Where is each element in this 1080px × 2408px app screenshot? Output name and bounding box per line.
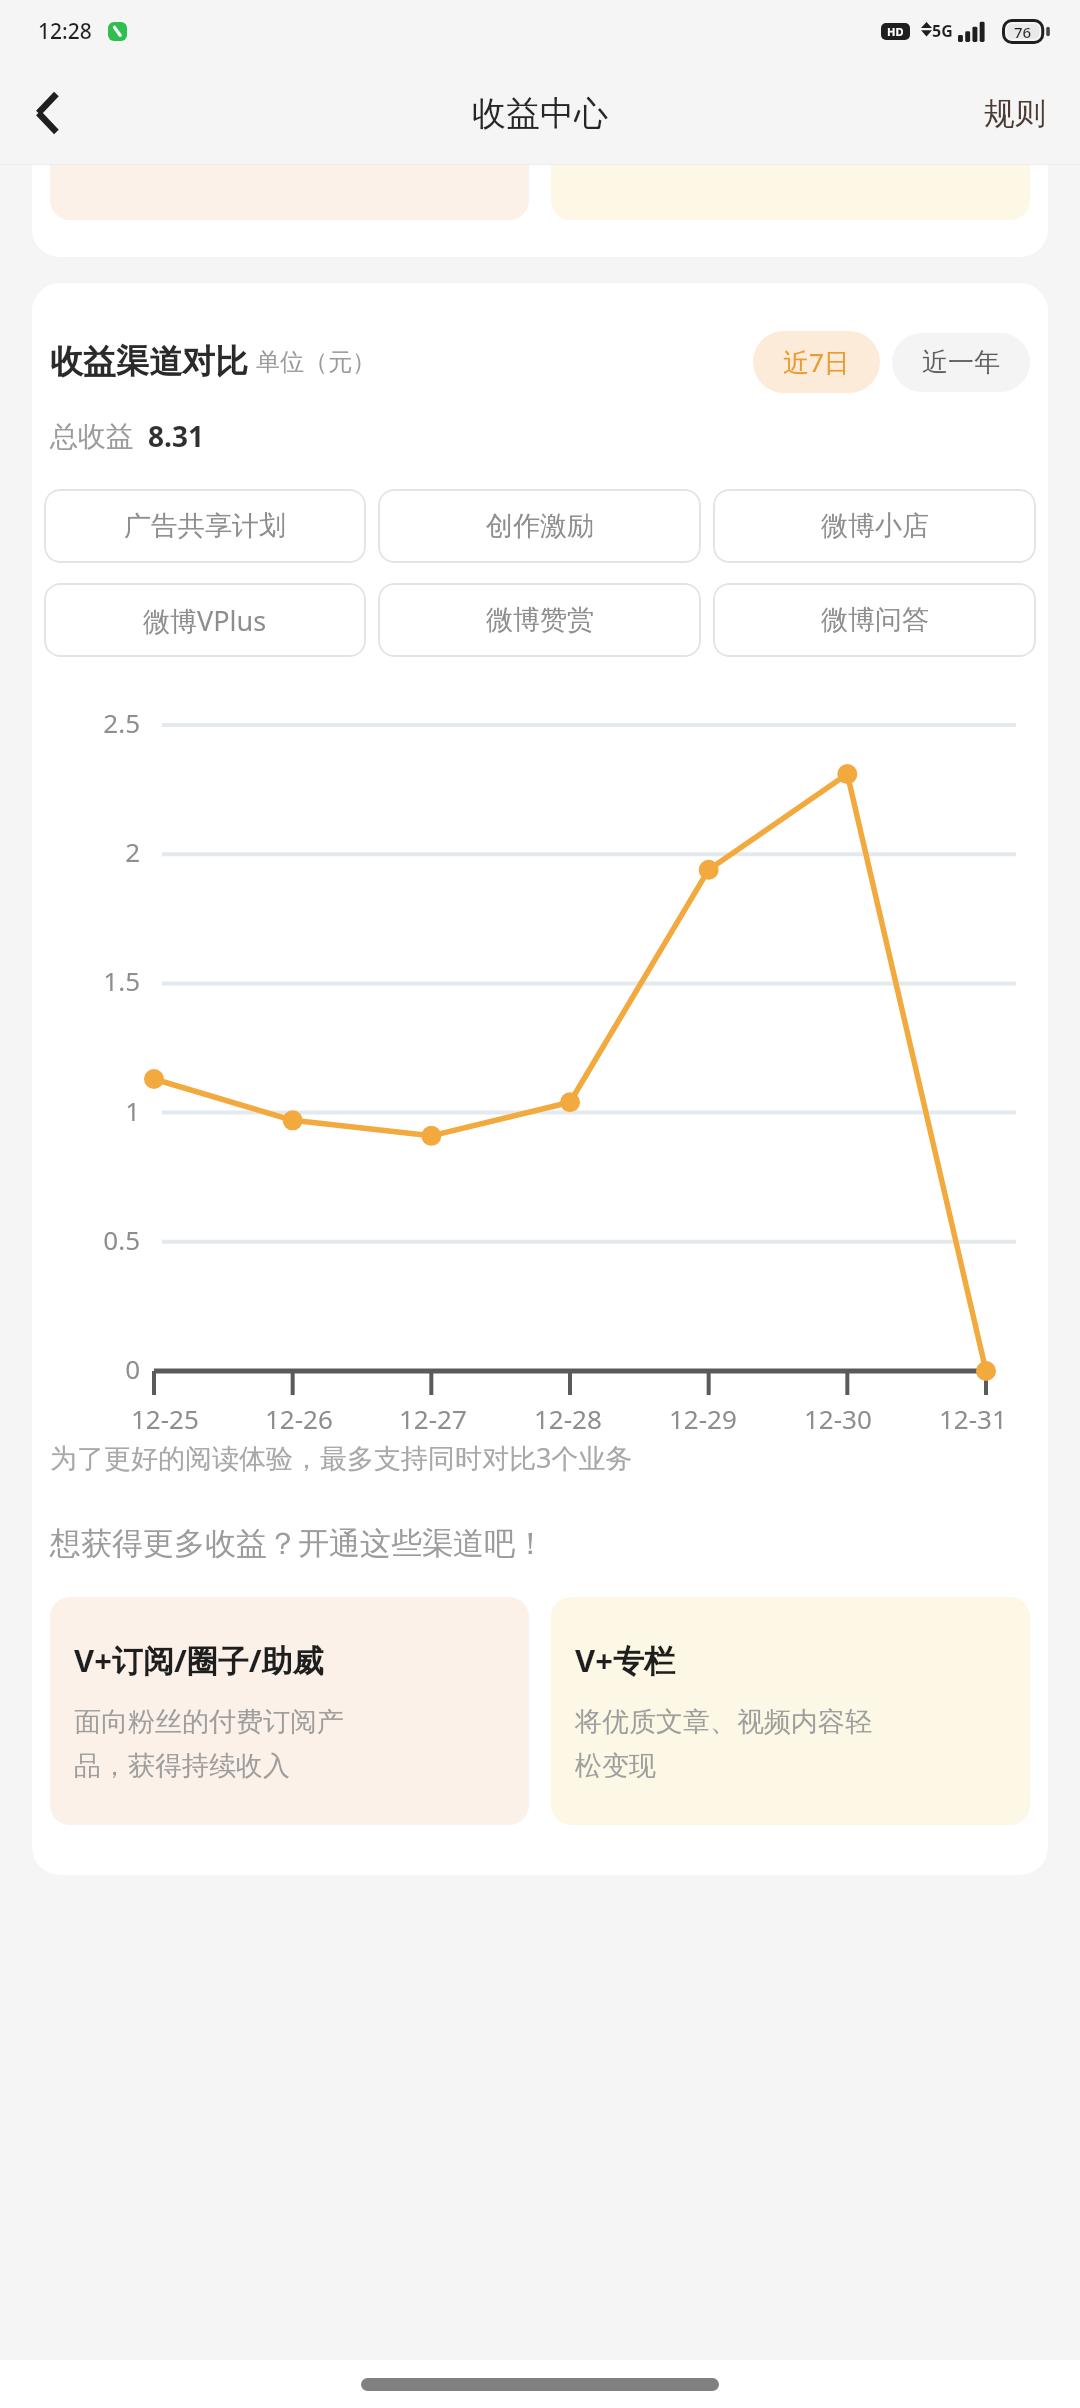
staticText: 12-31 [939,1401,1007,1436]
button[interactable]: 微博VPlus [44,583,366,657]
staticText: 1.5 [103,963,140,998]
staticText: 近一年 [922,346,1000,379]
staticText: 微博问答 [821,603,929,637]
button[interactable]: 规则 [950,74,1080,153]
staticText: 5G [932,20,953,42]
staticText: 12-27 [399,1401,467,1436]
button[interactable]: V+订阅/圈子/助威 [50,1597,529,1825]
staticText: V+订阅/圈子/助威 [74,1639,324,1681]
staticText: 想获得更多收益？开通这些渠道吧！ [50,1524,546,1563]
button[interactable]: 微博问答 [713,583,1036,657]
staticText: 将优质文章、视频内容轻 松变现 [575,1705,872,1783]
button[interactable]: 近一年 [892,333,1030,392]
staticText: 76 [1014,22,1032,42]
staticText: 收益中心 [472,92,608,135]
staticText: 微博小店 [821,509,929,543]
staticText: 12-26 [265,1401,333,1436]
staticText: 0 [125,1351,140,1386]
staticText: 近7日 [783,344,850,380]
staticText: 2 [125,834,140,869]
staticText: 1 [125,1093,140,1128]
button[interactable]: 微博赞赏 [378,583,701,657]
staticText: 0.5 [103,1222,140,1257]
staticText: 12-29 [669,1401,737,1436]
staticText: 单位（元） [256,347,376,377]
staticText: 微博赞赏 [486,603,594,637]
button[interactable]: 微博小店 [713,489,1036,563]
button[interactable]: V+专栏 [551,1597,1030,1825]
staticText: 12:28 [38,17,92,46]
button[interactable]: 近7日 [753,331,880,393]
button[interactable]: 创作激励 [378,489,701,563]
staticText: 12-25 [131,1401,199,1436]
staticText: 2.5 [103,705,140,740]
staticText: 12-30 [804,1401,872,1436]
staticText: 面向粉丝的付费订阅产 品，获得持续收入 [74,1705,344,1783]
staticText: 创作激励 [486,509,594,543]
button[interactable]: Back [0,65,96,161]
staticText: 收益渠道对比 [50,341,248,383]
button[interactable]: 广告共享计划 [44,489,366,563]
staticText: 总收益 [50,419,134,454]
staticText: 广告共享计划 [124,509,286,543]
staticText: 12-28 [534,1401,602,1436]
staticText: 8.31 [148,417,204,455]
staticText: HD [887,24,904,39]
staticText: V+专栏 [575,1639,675,1681]
staticText: 微博VPlus [143,602,267,639]
staticText: 规则 [984,94,1046,133]
staticText: 为了更好的阅读体验，最多支持同时对比3个业务 [50,1439,633,1476]
